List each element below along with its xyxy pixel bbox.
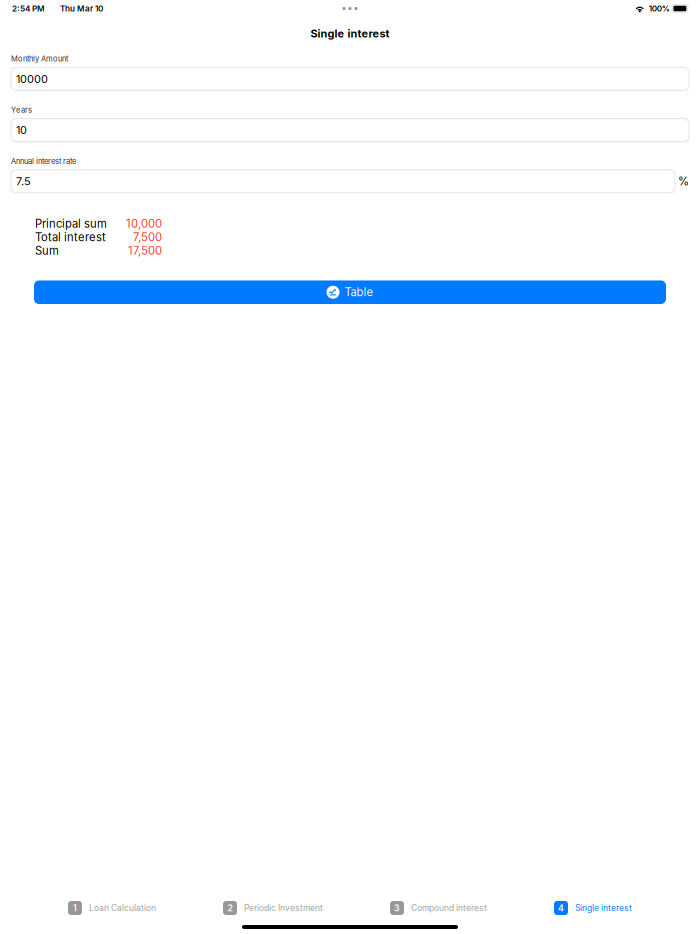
staticText: Compound interest [411, 903, 487, 913]
staticText: 4 [558, 903, 564, 913]
staticText: Table [344, 285, 373, 299]
staticText: Principal sum [35, 217, 107, 230]
staticText: 1 [73, 903, 77, 913]
staticText: 17,500 [128, 244, 162, 257]
staticText: Sum [35, 244, 59, 257]
button[interactable]: 1 [68, 900, 156, 916]
staticText: Years [11, 105, 32, 115]
staticText: 3 [394, 903, 400, 913]
staticText: 2 [227, 903, 232, 913]
staticText: 10000 [16, 72, 48, 85]
staticText: 10,000 [126, 217, 162, 230]
button[interactable]: Table [34, 280, 666, 304]
staticText: 2:54 PM [12, 4, 45, 13]
staticText: 10 [16, 123, 27, 137]
staticText: % [678, 174, 689, 188]
staticText: 7,500 [133, 230, 162, 244]
staticText: Single interest [310, 27, 389, 40]
button[interactable]: 2 [223, 900, 323, 916]
staticText: Thu Mar 10 [60, 4, 103, 13]
staticText: Total interest [35, 230, 106, 244]
button[interactable]: 4 [554, 900, 632, 916]
staticText: Single interest [575, 903, 632, 913]
staticText: 7.5 [16, 175, 31, 188]
staticText: Monthly Amount [11, 54, 68, 63]
staticText: Loan Calculation [89, 903, 156, 913]
staticText: 100% [649, 4, 670, 13]
staticText: Periodic Investment [244, 903, 323, 913]
staticText: Annual interest rate [11, 157, 76, 166]
button[interactable]: 3 [390, 900, 487, 916]
